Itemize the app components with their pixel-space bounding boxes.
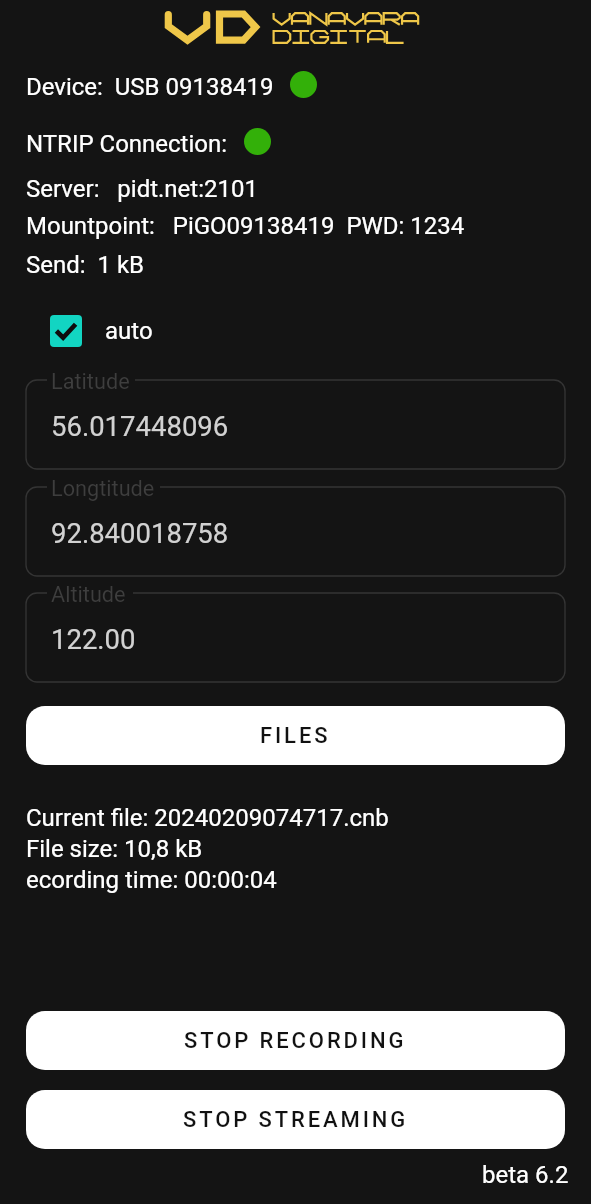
button[interactable]: Longtitude xyxy=(26,487,565,576)
button[interactable]: Altitude xyxy=(26,593,565,682)
staticText: 92.840018758 xyxy=(51,517,229,549)
staticText: 56.017448096 xyxy=(51,410,229,442)
staticText: Longtitude xyxy=(51,476,155,501)
staticText: Send: 1 kB xyxy=(26,251,145,279)
staticText: Altitude xyxy=(51,582,126,607)
staticText: STOP STREAMING xyxy=(183,1107,409,1133)
staticText: STOP RECORDING xyxy=(184,1028,407,1054)
staticText: ecording time: 00:00:04 xyxy=(26,866,277,894)
staticText: Device: USB 09138419 xyxy=(26,73,274,101)
button[interactable]: auto xyxy=(42,307,169,355)
staticText: NTRIP Connection: xyxy=(26,130,228,158)
button[interactable]: STOP RECORDING xyxy=(26,1011,565,1070)
button[interactable]: STOP STREAMING xyxy=(26,1090,565,1149)
staticText: File size: 10,8 kB xyxy=(26,835,203,863)
staticText: beta 6.2 xyxy=(482,1161,569,1189)
staticText: Server: pidt.net:2101 xyxy=(26,175,258,203)
other: Vanavara Digital logo xyxy=(160,6,422,52)
staticText: auto xyxy=(105,317,153,345)
button[interactable]: Latitude xyxy=(26,380,565,469)
staticText: Current file: 20240209074717.cnb xyxy=(26,804,389,832)
staticText: Latitude xyxy=(51,369,130,394)
button[interactable]: FILES xyxy=(26,706,565,765)
staticText: 122.00 xyxy=(51,623,136,655)
staticText: Mountpoint: PiGO09138419 PWD: 1234 xyxy=(26,212,465,240)
staticText: FILES xyxy=(260,723,331,749)
